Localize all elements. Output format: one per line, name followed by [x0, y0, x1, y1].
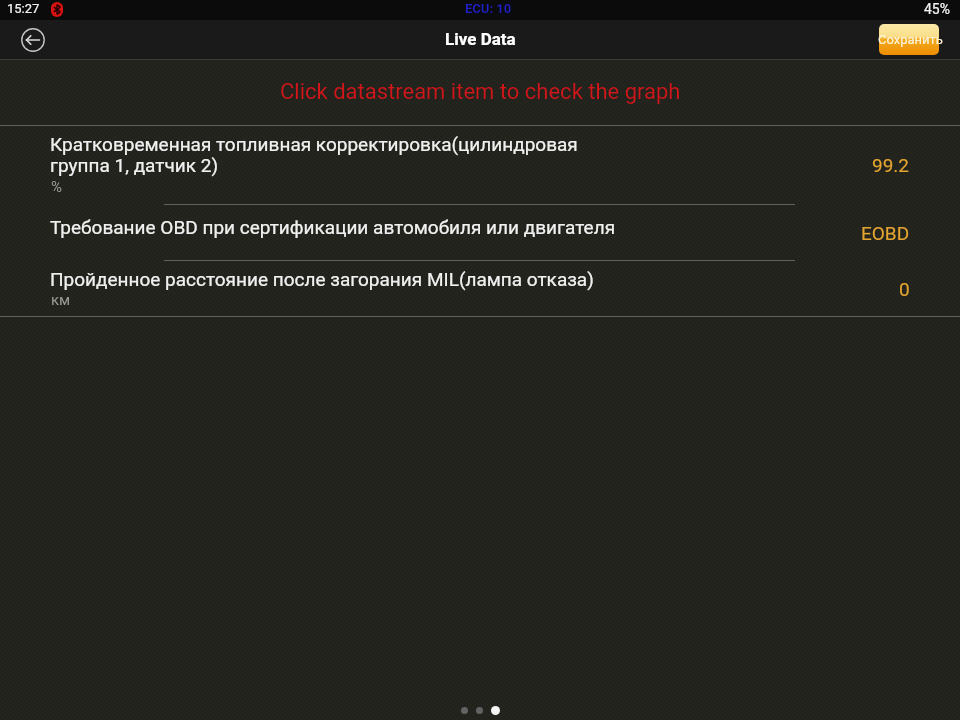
- button[interactable]: Back: [13, 24, 53, 64]
- staticText: Кратковременная топливная корректировка(…: [50, 133, 578, 177]
- button[interactable]: [879, 24, 939, 55]
- staticText: Live Data: [445, 29, 516, 49]
- staticText: ECU: 10: [465, 1, 512, 16]
- button[interactable]: Пройденное расстояние после загорания MI…: [0, 261, 960, 317]
- button[interactable]: Требование OBD при сертификации автомоби…: [0, 205, 960, 261]
- button[interactable]: Кратковременная топливная корректировка(…: [0, 126, 960, 205]
- staticText: 99.2: [872, 154, 910, 176]
- staticText: км: [51, 291, 71, 309]
- staticText: 45%: [924, 1, 950, 17]
- staticText: 15:27: [7, 1, 40, 16]
- staticText: Click datastream item to check the graph: [280, 79, 681, 105]
- staticText: Требование OBD при сертификации автомоби…: [50, 216, 616, 238]
- staticText: %: [51, 178, 62, 196]
- staticText: EOBD: [861, 222, 910, 244]
- staticText: Пройденное расстояние после загорания MI…: [50, 268, 594, 290]
- staticText: Сохранить: [878, 32, 943, 47]
- staticText: 0: [899, 278, 910, 300]
